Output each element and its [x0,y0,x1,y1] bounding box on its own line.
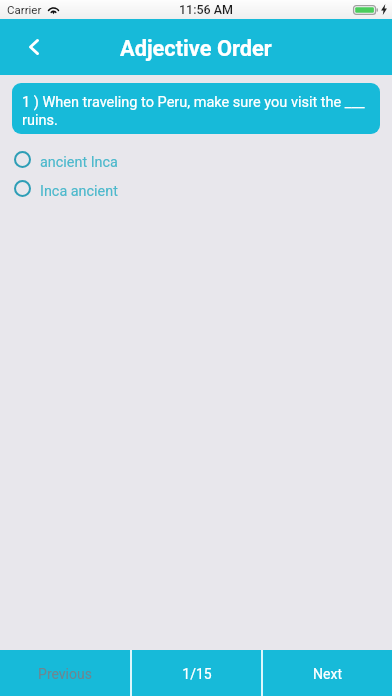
staticText: Adjective Order [120,36,272,62]
staticText: Carrier [7,3,42,16]
button[interactable]: Inca ancient [0,180,392,197]
button[interactable]: Previous [0,650,130,696]
staticText: ancient Inca [40,154,118,171]
staticText: 1/15 [182,666,212,682]
staticText: 1 ) When traveling to Peru, make sure yo… [22,94,370,128]
button[interactable]: Next [263,650,392,696]
button[interactable]: 1/15 [132,650,261,696]
staticText: Inca ancient [40,183,118,200]
staticText: 11:56 AM [179,2,234,17]
button[interactable]: Back [0,19,56,75]
button[interactable]: ancient Inca [0,151,392,168]
staticText: Next [313,666,342,682]
staticText: Previous [38,666,92,682]
